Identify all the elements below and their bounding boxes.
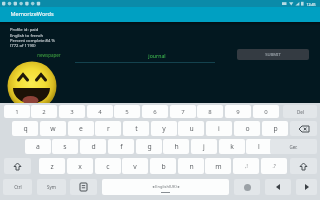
button[interactable] [265, 179, 291, 195]
staticText: r [107, 124, 110, 133]
button[interactable]: v [122, 158, 148, 174]
button[interactable] [290, 121, 317, 136]
staticText: ,! [245, 163, 248, 169]
staticText: Del [297, 109, 304, 115]
staticText: w [50, 124, 56, 133]
staticText: o [245, 124, 250, 133]
button[interactable]: 4 [87, 105, 113, 118]
button[interactable]: z [39, 158, 65, 174]
button[interactable]: j [191, 139, 217, 154]
staticText: 6 [153, 108, 157, 116]
button[interactable]: 9 [225, 105, 251, 118]
staticText: newspaper [37, 52, 61, 58]
staticText: t [135, 124, 138, 133]
staticText: SUBMIT [265, 52, 281, 58]
staticText: j [203, 142, 205, 151]
button[interactable]: 1 [4, 105, 30, 118]
button[interactable]: 7 [170, 105, 196, 118]
staticText: journal [148, 52, 166, 59]
button[interactable]: ,! [233, 158, 259, 174]
staticText: .? [272, 163, 276, 169]
staticText: z [50, 162, 54, 171]
button[interactable]: o [234, 121, 260, 136]
staticText: MemorizeWords [10, 10, 54, 18]
staticText: 12:45 [306, 2, 316, 7]
staticText: 4 [98, 108, 102, 116]
staticText: d [91, 142, 96, 151]
button[interactable]: Ger. [270, 139, 317, 154]
staticText: 5 [125, 108, 129, 116]
button[interactable]: ◂ English(UK) ▸ [102, 179, 229, 195]
button[interactable]: SUBMIT [237, 49, 309, 60]
button[interactable]: u [178, 121, 204, 136]
button[interactable]: x [67, 158, 93, 174]
button[interactable] [234, 179, 260, 195]
staticText: Sym [47, 184, 56, 190]
button[interactable]: 3 [59, 105, 85, 118]
button[interactable]: w [40, 121, 66, 136]
button[interactable]: n [178, 158, 204, 174]
staticText: i [218, 124, 220, 133]
staticText: b [161, 162, 166, 171]
button[interactable]: h [163, 139, 189, 154]
button[interactable]: Sym [37, 179, 66, 195]
button[interactable]: y [151, 121, 177, 136]
staticText: 1 [15, 108, 19, 116]
button[interactable]: l [246, 139, 272, 154]
staticText: 8 [208, 108, 212, 116]
button[interactable]: Del [283, 105, 317, 118]
staticText: 0 [264, 108, 268, 116]
button[interactable]: 5 [114, 105, 140, 118]
button[interactable]: a [25, 139, 51, 154]
staticText: s [63, 142, 67, 151]
button[interactable]: Ctrl [3, 179, 32, 195]
staticText: h [174, 142, 179, 151]
button[interactable] [70, 179, 97, 195]
staticText: Profile id: paid English to french Perce… [10, 27, 55, 48]
button[interactable]: t [123, 121, 149, 136]
staticText: 9 [236, 108, 240, 116]
staticText: v [133, 162, 137, 171]
button[interactable]: k [219, 139, 245, 154]
staticText: a [36, 142, 40, 151]
button[interactable]: m [205, 158, 231, 174]
staticText: Ctrl [14, 184, 22, 190]
button[interactable]: s [52, 139, 78, 154]
staticText: y [162, 124, 166, 133]
staticText: 3 [70, 108, 74, 116]
button[interactable]: p [262, 121, 288, 136]
staticText: u [189, 124, 194, 133]
button[interactable]: 0 [253, 105, 279, 118]
button[interactable]: g [136, 139, 162, 154]
button[interactable]: 6 [142, 105, 168, 118]
staticText: n [189, 162, 194, 171]
button[interactable]: r [95, 121, 121, 136]
button[interactable]: d [80, 139, 106, 154]
staticText: ◂ English(UK) ▸ [152, 184, 180, 189]
button[interactable]: c [95, 158, 121, 174]
staticText: e [79, 124, 83, 133]
staticText: 2 [42, 108, 46, 116]
staticText: f [120, 142, 123, 151]
button[interactable] [290, 158, 317, 174]
staticText: g [147, 142, 152, 151]
staticText: x [78, 162, 82, 171]
button[interactable]: f [108, 139, 134, 154]
staticText: c [106, 162, 110, 171]
staticText: Ger. [289, 144, 298, 150]
button[interactable] [296, 179, 317, 195]
button[interactable]: e [68, 121, 94, 136]
button[interactable]: q [12, 121, 38, 136]
staticText: m [215, 162, 222, 171]
staticText: 7 [181, 108, 185, 116]
staticText: k [230, 142, 234, 151]
staticText: l [258, 142, 260, 151]
button[interactable]: .? [261, 158, 287, 174]
button[interactable]: i [206, 121, 232, 136]
button[interactable]: 2 [31, 105, 57, 118]
button[interactable] [4, 158, 31, 174]
button[interactable]: 8 [197, 105, 223, 118]
staticText: p [273, 124, 278, 133]
staticText: q [23, 124, 28, 133]
button[interactable]: b [150, 158, 176, 174]
